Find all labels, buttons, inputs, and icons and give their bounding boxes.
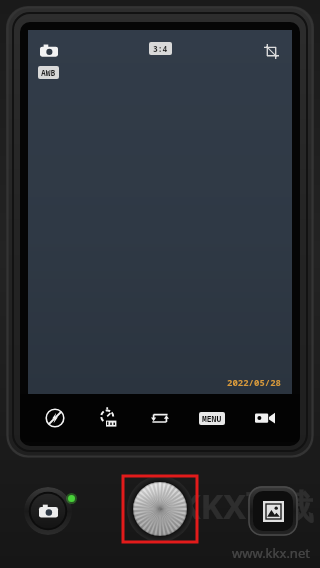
staticText: 3:4 <box>153 43 168 54</box>
staticText: 2022/05/28 <box>227 376 282 388</box>
button[interactable]: Shutter <box>122 475 198 543</box>
button[interactable]: Camera mode dial <box>24 487 72 535</box>
staticText: AWB <box>41 67 56 78</box>
button[interactable]: AWB <box>38 66 59 79</box>
button[interactable]: 3:4 <box>149 42 172 55</box>
staticText: KKX下载 <box>178 483 314 529</box>
button[interactable]: Crop <box>260 40 282 62</box>
button[interactable]: Flash off <box>38 401 72 435</box>
button[interactable]: MENU <box>195 401 229 435</box>
staticText: MENU <box>202 413 222 424</box>
button[interactable]: Switch camera <box>143 401 177 435</box>
button[interactable]: Self timer off <box>91 401 125 435</box>
button[interactable]: Gallery <box>248 486 298 536</box>
staticText: www.kkx.net <box>232 544 310 562</box>
button[interactable]: Photo mode <box>38 40 60 62</box>
button[interactable]: Video mode <box>248 401 282 435</box>
